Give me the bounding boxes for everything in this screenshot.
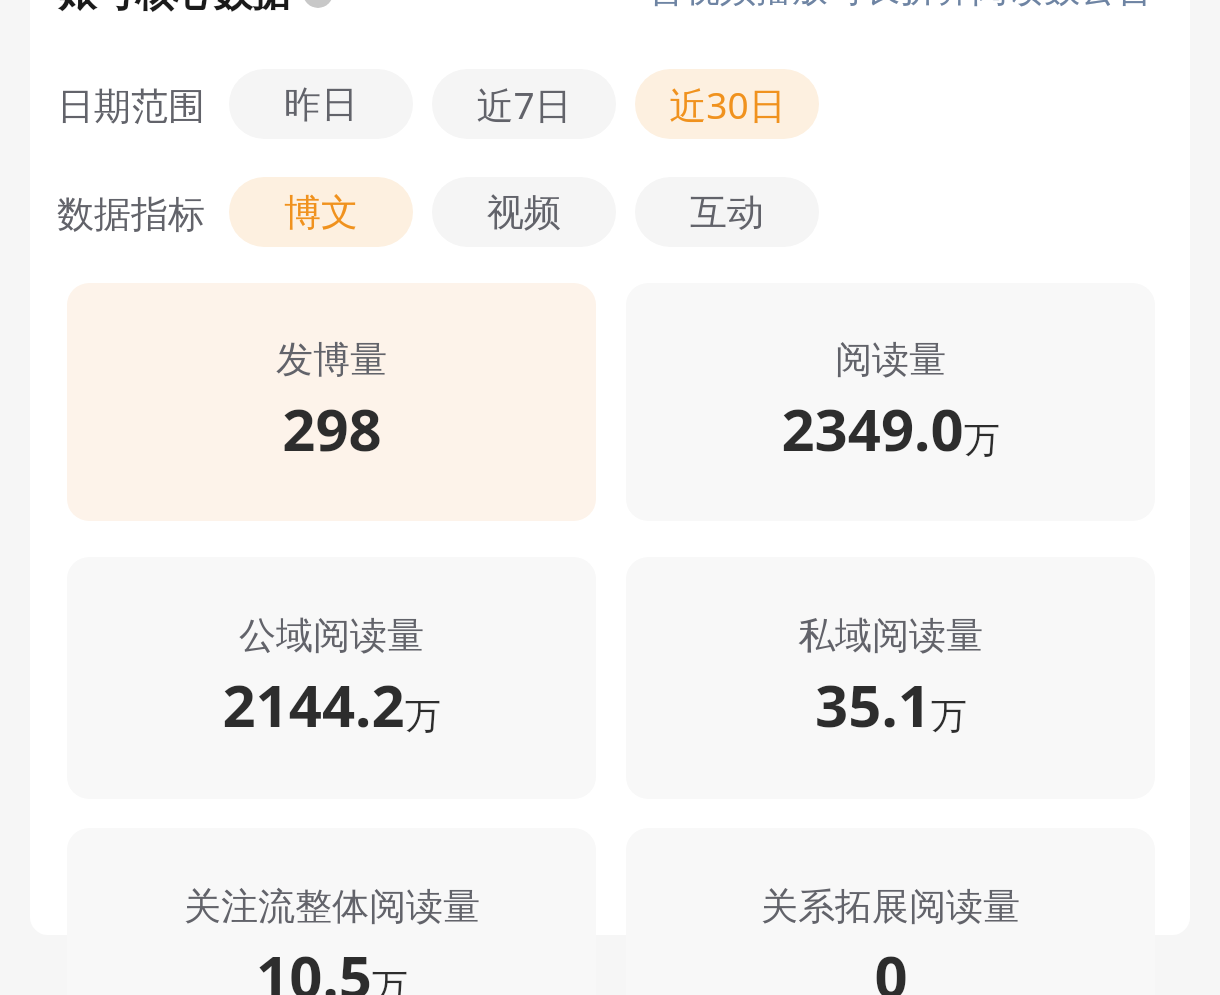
button[interactable]: 含视频播放时长折算阅读数公告 xyxy=(648,0,1152,11)
staticText: 账号核心数据 xyxy=(57,0,291,17)
button[interactable]: 公域阅读量 xyxy=(67,557,596,799)
button[interactable]: 关注流整体阅读量 xyxy=(67,828,596,995)
staticText: 公域阅读量 xyxy=(239,612,424,659)
staticText: 万 xyxy=(931,693,967,738)
staticText: 关系拓展阅读量 xyxy=(761,883,1020,930)
staticText: 2349.0 xyxy=(781,389,964,468)
staticText: 日期范围 xyxy=(57,83,205,130)
staticText: 视频 xyxy=(487,189,561,236)
staticText: 10.5 xyxy=(256,936,372,995)
button[interactable]: 账号核心数据 xyxy=(57,0,333,17)
staticText: 万 xyxy=(372,964,408,995)
staticText: 298 xyxy=(282,389,382,468)
button[interactable]: 昨日 xyxy=(229,69,413,139)
staticText: 昨日 xyxy=(284,81,358,128)
button[interactable]: 说明 xyxy=(303,0,333,8)
staticText: 近7日 xyxy=(476,79,572,130)
button[interactable]: 发博量 xyxy=(67,283,596,521)
staticText: 阅读量 xyxy=(835,336,946,383)
staticText: 2144.2 xyxy=(222,665,405,744)
staticText: 关注流整体阅读量 xyxy=(184,883,480,930)
staticText: 万 xyxy=(405,693,441,738)
button[interactable]: 近7日 xyxy=(432,69,616,139)
button[interactable]: 互动 xyxy=(635,177,819,247)
staticText: 含视频播放时长折算阅读数公告 xyxy=(648,0,1152,11)
button[interactable]: 私域阅读量 xyxy=(626,557,1155,799)
button[interactable]: 近30日 xyxy=(635,69,819,139)
staticText: 万 xyxy=(964,417,1000,462)
staticText: 互动 xyxy=(690,189,764,236)
staticText: 发博量 xyxy=(276,336,387,383)
staticText: 私域阅读量 xyxy=(798,612,983,659)
button[interactable]: 视频 xyxy=(432,177,616,247)
staticText: 35.1 xyxy=(815,665,931,744)
button[interactable]: 阅读量 xyxy=(626,283,1155,521)
button[interactable]: 关系拓展阅读量 xyxy=(626,828,1155,995)
staticText: 近30日 xyxy=(669,79,786,130)
staticText: 博文 xyxy=(284,189,358,236)
staticText: 数据指标 xyxy=(57,191,205,238)
button[interactable]: 博文 xyxy=(229,177,413,247)
staticText: 0 xyxy=(874,936,908,995)
